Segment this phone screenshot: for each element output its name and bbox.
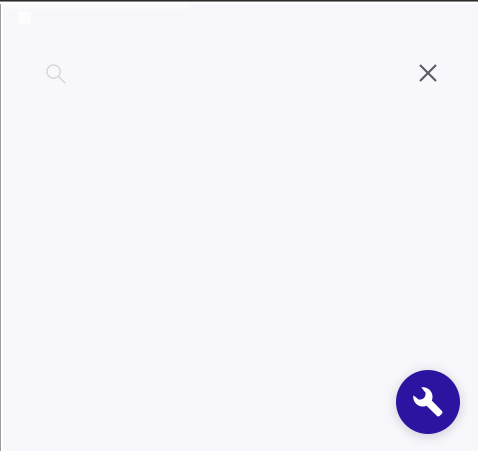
button[interactable]: Search (38, 56, 74, 92)
button[interactable]: Tools (396, 370, 460, 434)
button[interactable]: Close (410, 56, 446, 92)
